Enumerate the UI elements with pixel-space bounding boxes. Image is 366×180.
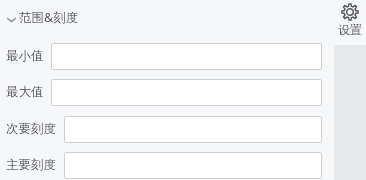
staticText: 范围&刻度 [19,9,79,26]
button[interactable]: 设置 [333,3,366,37]
staticText: 最小值 [6,48,44,64]
button[interactable] [51,43,322,70]
other: 设置 [341,3,359,21]
button[interactable]: Collapse [0,6,90,28]
staticText: 次要刻度 [6,121,56,137]
staticText: 最大值 [6,84,44,100]
button[interactable] [64,152,322,179]
staticText: 设置 [338,22,362,37]
button[interactable] [64,116,322,143]
staticText: 主要刻度 [6,157,56,173]
button[interactable] [51,79,322,106]
other: Collapse [0,10,16,26]
